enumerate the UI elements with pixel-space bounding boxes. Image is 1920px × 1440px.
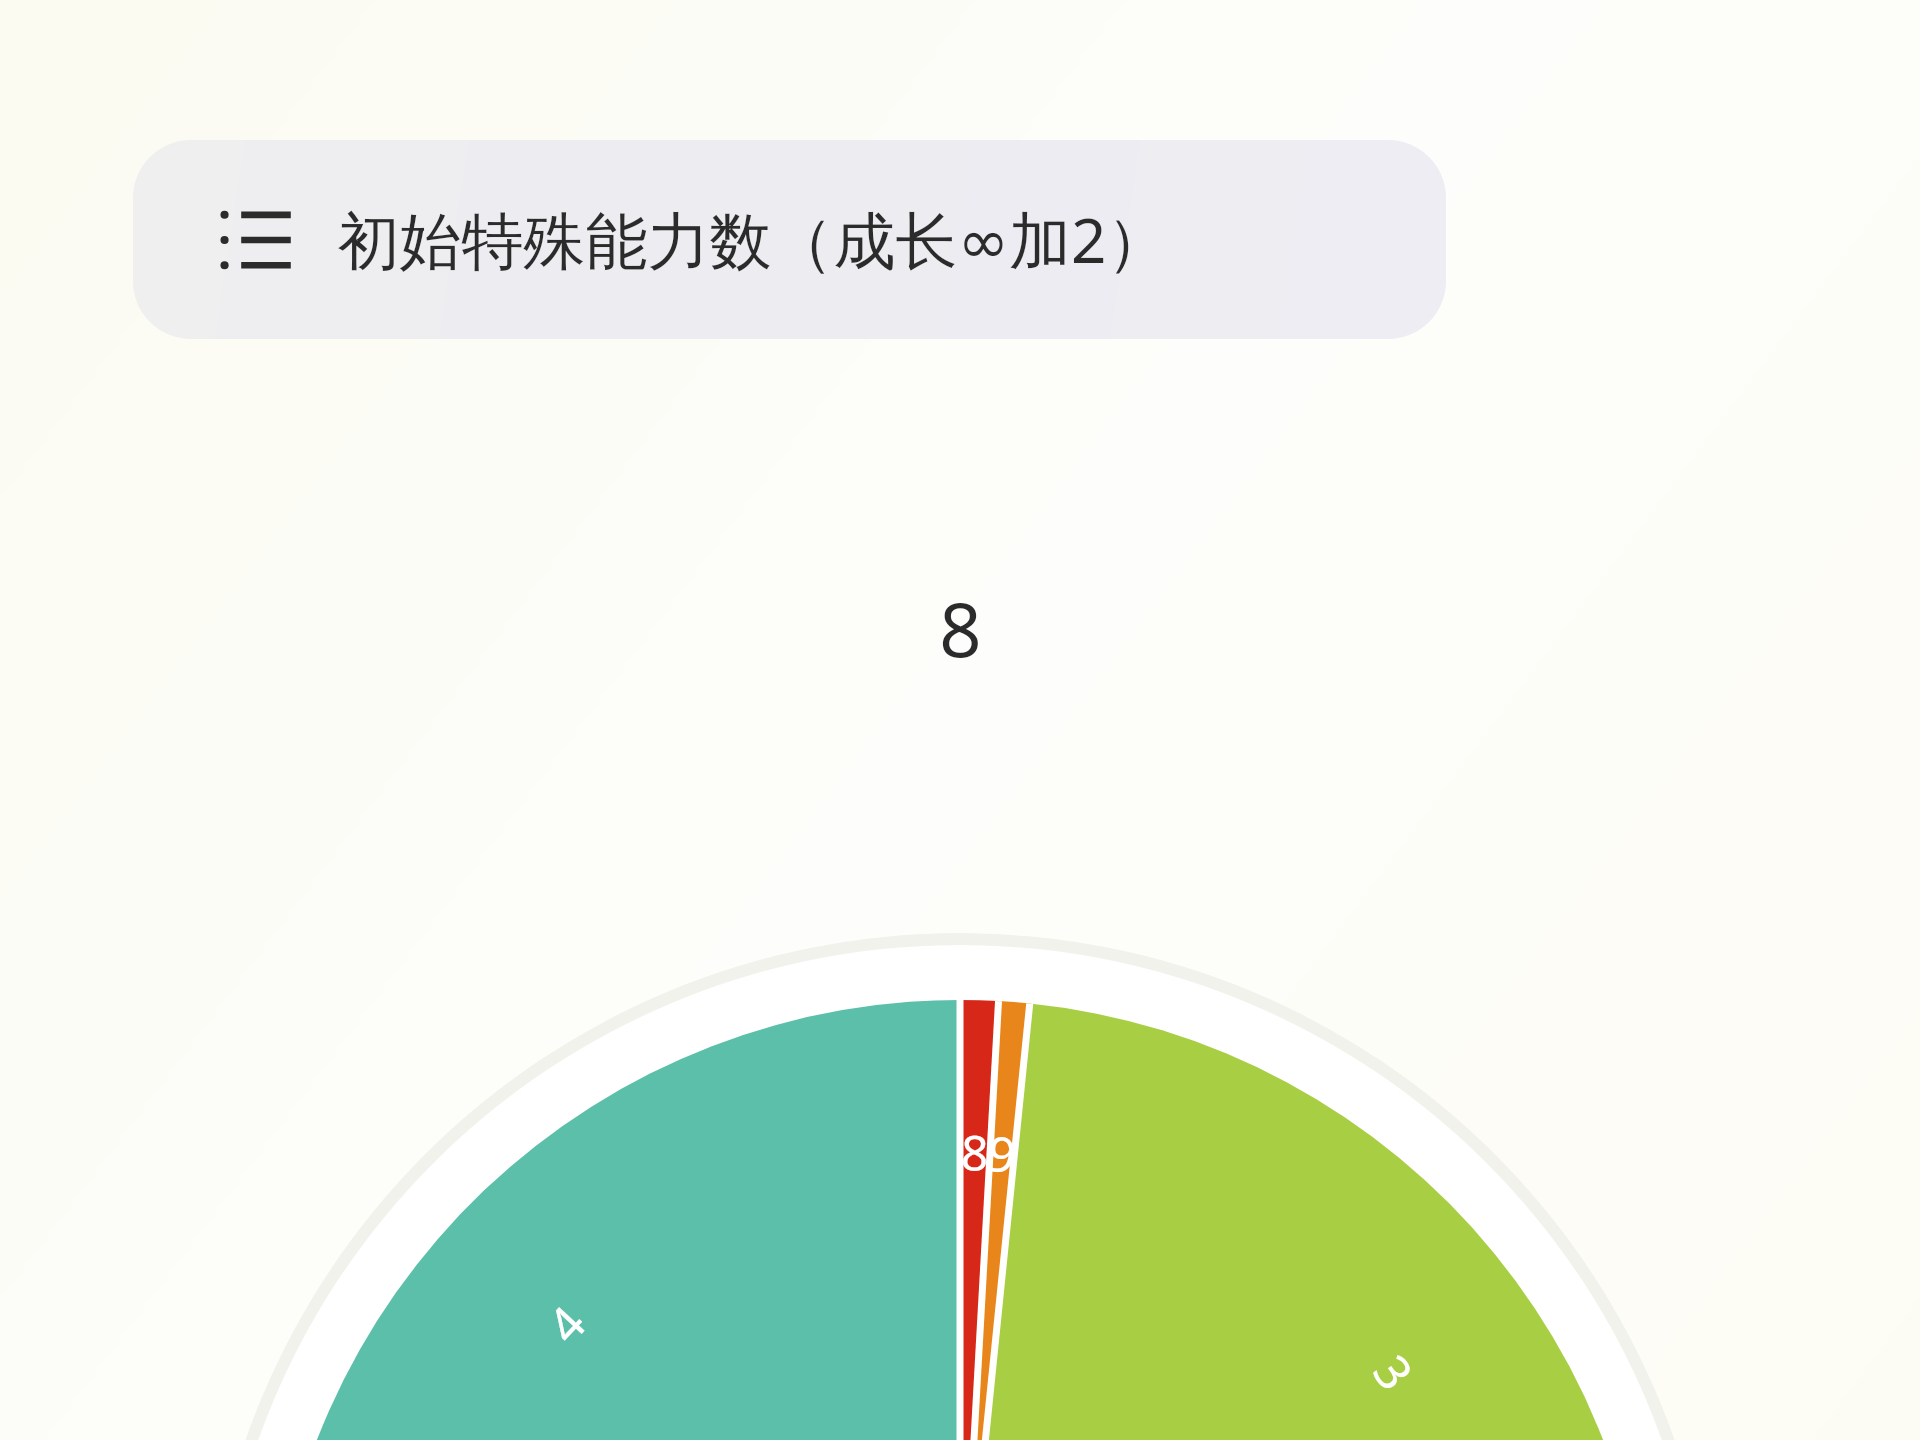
button[interactable]: List: [133, 140, 1446, 339]
button[interactable]: Pie chart: [0, 0, 1920, 1440]
other: List: [219, 205, 293, 275]
staticText: 初始特殊能力数（成长∞加2）: [337, 197, 1169, 282]
staticText: 8: [939, 578, 982, 679]
